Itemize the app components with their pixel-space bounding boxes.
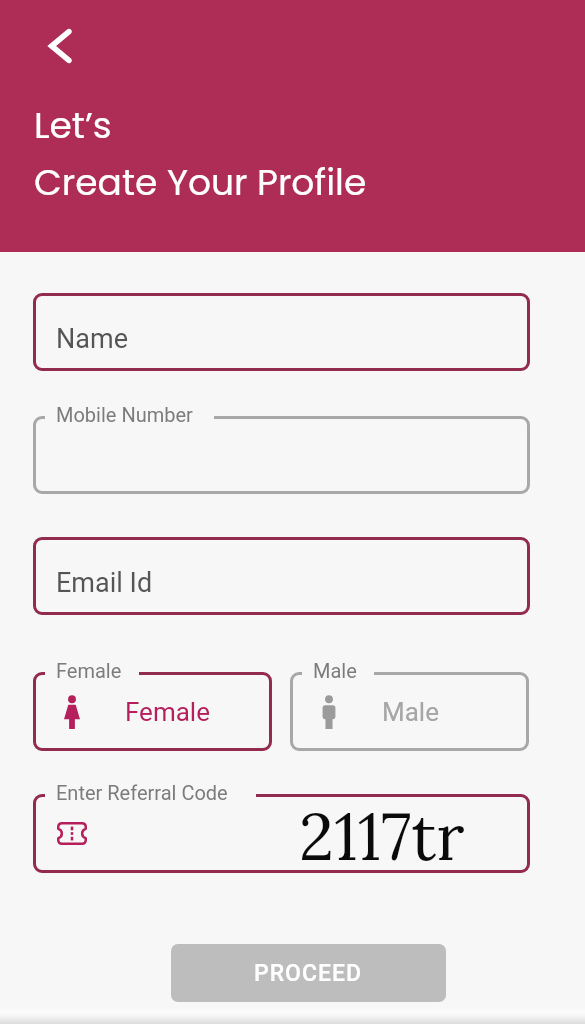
- staticText: PROCEED: [254, 960, 363, 987]
- staticText: Name: [56, 323, 128, 355]
- button[interactable]: Name: [33, 293, 530, 371]
- button[interactable]: Female: [33, 672, 272, 751]
- button[interactable]: 2117tr: [33, 794, 530, 873]
- staticText: Let’s: [34, 100, 112, 150]
- button[interactable]: Male: [290, 672, 529, 751]
- staticText: 2117tr: [299, 795, 465, 874]
- staticText: Male: [382, 697, 439, 727]
- button[interactable]: [33, 416, 530, 494]
- staticText: Female: [125, 697, 210, 727]
- staticText: Create Your Profile: [34, 157, 367, 207]
- button[interactable]: Back: [37, 22, 85, 70]
- staticText: Mobile Number: [56, 403, 193, 426]
- button[interactable]: PROCEED: [171, 944, 446, 1002]
- button[interactable]: Email Id: [33, 537, 530, 615]
- staticText: Female: [56, 659, 122, 682]
- staticText: Email Id: [56, 567, 153, 599]
- staticText: Enter Referral Code: [56, 781, 228, 804]
- staticText: Male: [313, 659, 357, 682]
